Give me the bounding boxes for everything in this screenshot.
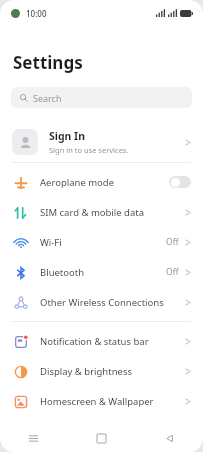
button[interactable]: Other Wireless Connections bbox=[0, 287, 203, 317]
button[interactable]: Display & brightness bbox=[0, 356, 203, 386]
button[interactable]: Homescreen & Wallpaper bbox=[0, 386, 203, 416]
button[interactable]: Aeroplane mode toggle bbox=[169, 176, 191, 188]
button[interactable]: SIM card & mobile data bbox=[0, 197, 203, 227]
button[interactable]: Notification & status bar bbox=[0, 326, 203, 356]
staticText: Off bbox=[166, 266, 179, 278]
button[interactable]: Back bbox=[135, 424, 203, 452]
button[interactable]: Home bbox=[67, 424, 135, 452]
button[interactable]: Aeroplane mode bbox=[0, 167, 203, 197]
staticText: SIM card & mobile data bbox=[40, 206, 185, 219]
staticText: Wi-Fi bbox=[40, 236, 166, 249]
staticText: Off bbox=[166, 236, 179, 248]
button[interactable]: Search bbox=[11, 87, 192, 108]
button[interactable]: Wi-Fi bbox=[0, 227, 203, 257]
staticText: Homescreen & Wallpaper bbox=[40, 395, 185, 408]
staticText: Display & brightness bbox=[40, 365, 185, 378]
staticText: 10:00 bbox=[26, 8, 47, 19]
staticText: Sign in to use services. bbox=[49, 145, 129, 155]
staticText: Sign In bbox=[49, 129, 86, 143]
staticText: Search bbox=[33, 92, 62, 104]
staticText: Aeroplane mode bbox=[40, 176, 169, 189]
staticText: Settings bbox=[13, 51, 83, 74]
button[interactable]: Recent apps bbox=[0, 424, 67, 452]
staticText: Notification & status bar bbox=[40, 335, 185, 348]
staticText: Other Wireless Connections bbox=[40, 296, 185, 309]
button[interactable]: Sign In bbox=[0, 122, 203, 162]
button[interactable]: Bluetooth bbox=[0, 257, 203, 287]
staticText: Bluetooth bbox=[40, 266, 166, 279]
